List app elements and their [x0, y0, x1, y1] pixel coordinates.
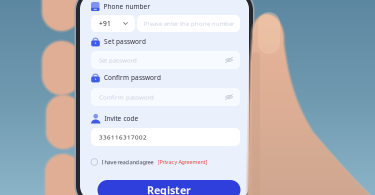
- button[interactable]: Set password: [91, 51, 240, 69]
- button[interactable]: Register: [97, 180, 240, 195]
- button[interactable]: Please enter the phone number: [137, 15, 240, 32]
- staticText: 336116317002: [99, 133, 147, 141]
- button[interactable]: 336116317002: [91, 128, 240, 146]
- staticText: +91: [99, 19, 111, 28]
- staticText: Confirm password: [104, 73, 161, 82]
- staticText: Please enter the phone number: [144, 19, 234, 27]
- button[interactable]: +91: [91, 15, 135, 32]
- staticText: Phone number: [103, 2, 150, 11]
- staticText: Set password: [104, 37, 146, 46]
- button[interactable]: I have read and agree: [91, 157, 240, 167]
- staticText: Confirm password: [99, 93, 154, 101]
- staticText: Set password: [99, 56, 137, 64]
- staticText: [Privacy Agreement]: [158, 158, 208, 166]
- button[interactable]: Confirm password: [91, 88, 240, 106]
- staticText: I have read and agree: [102, 158, 154, 166]
- staticText: Invite code: [104, 114, 138, 123]
- staticText: Register: [147, 183, 191, 195]
